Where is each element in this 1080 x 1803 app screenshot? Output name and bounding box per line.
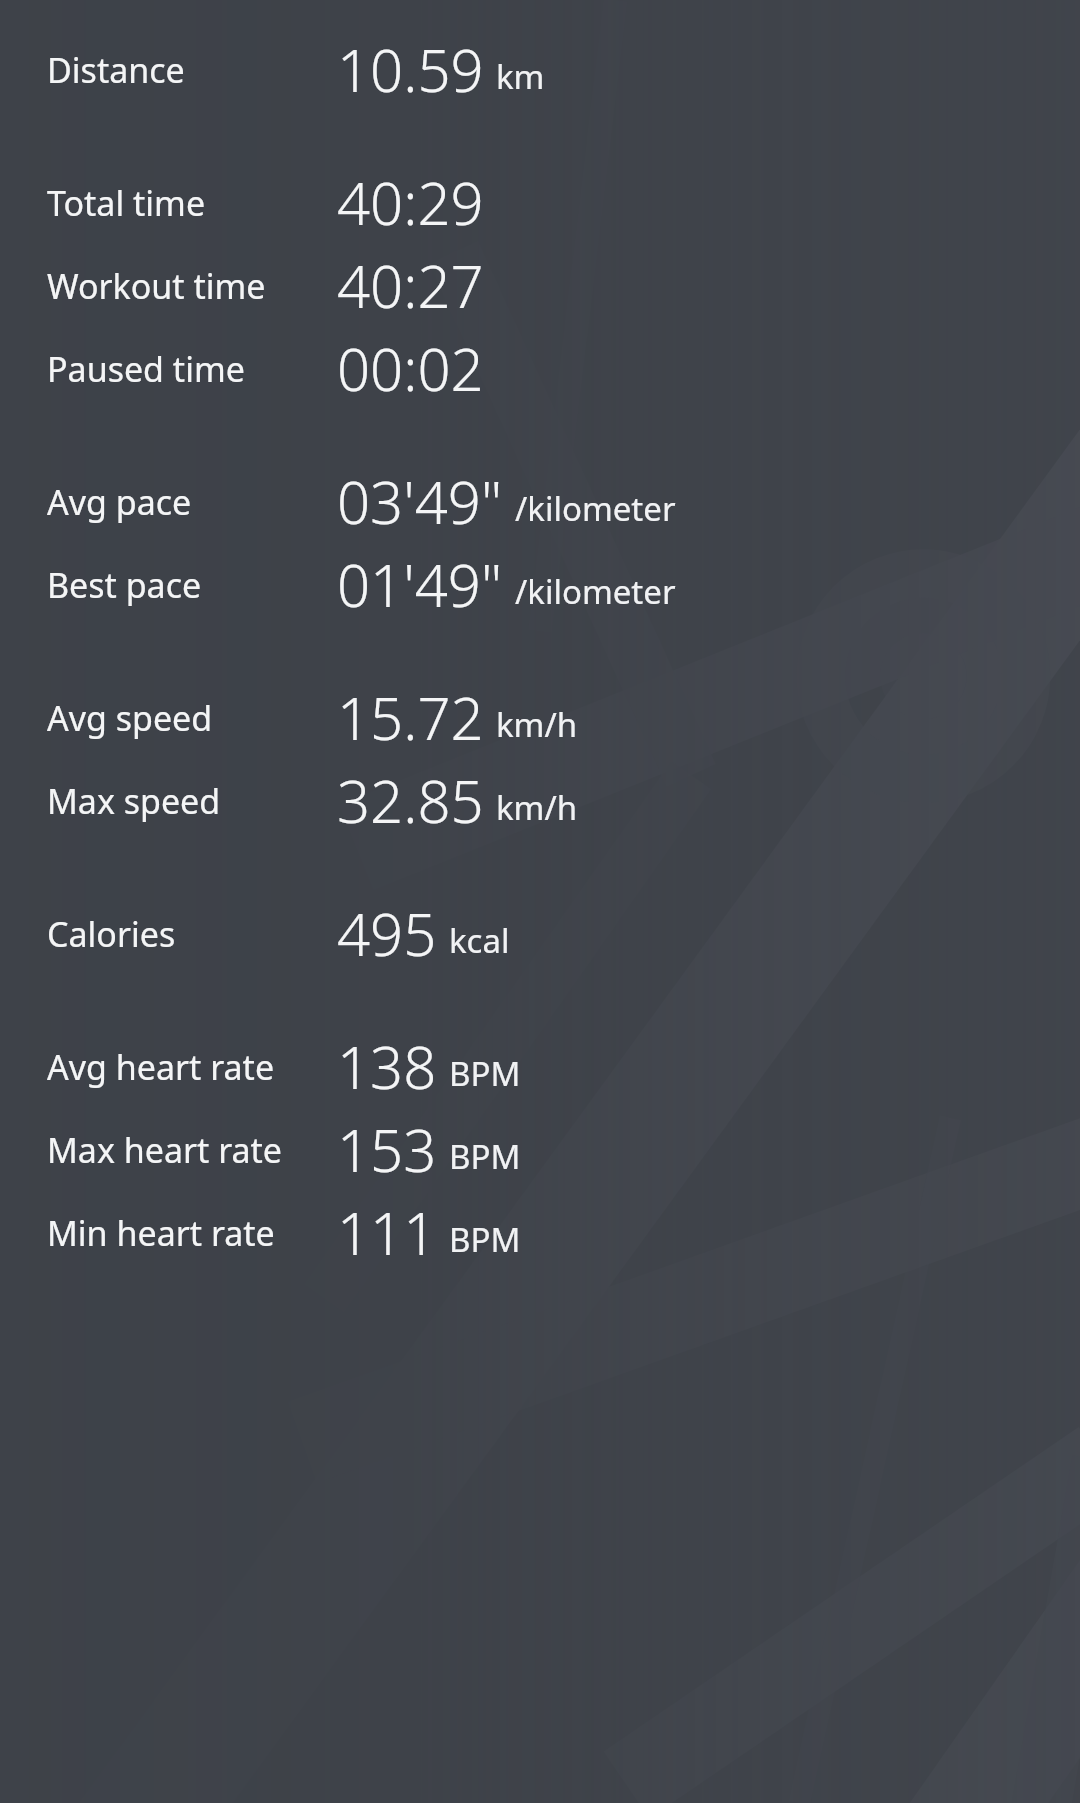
staticText: 03'49" — [337, 462, 503, 541]
staticText: BPM — [449, 1051, 521, 1096]
staticText: 40:29 — [337, 163, 484, 242]
staticText: Min heart rate — [47, 1210, 275, 1256]
button[interactable]: Avg heart rate — [0, 1025, 1080, 1108]
staticText: Avg pace — [47, 479, 192, 525]
staticText: kcal — [449, 918, 510, 963]
button[interactable]: Workout time — [0, 244, 1080, 327]
button[interactable]: Paused time — [0, 327, 1080, 410]
staticText: 138 — [337, 1027, 437, 1106]
staticText: 32.85 — [337, 761, 484, 840]
staticText: 495 — [337, 894, 437, 973]
button[interactable]: Avg pace — [0, 460, 1080, 543]
staticText: 01'49" — [337, 545, 503, 624]
staticText: Avg speed — [47, 695, 213, 741]
staticText: Workout time — [47, 263, 266, 309]
staticText: /kilometer — [515, 486, 676, 531]
staticText: km/h — [496, 785, 578, 830]
button[interactable]: Max speed — [0, 759, 1080, 842]
staticText: Total time — [47, 180, 206, 226]
staticText: Paused time — [47, 346, 245, 392]
staticText: BPM — [449, 1134, 521, 1179]
staticText: Calories — [47, 911, 176, 957]
staticText: 111 — [337, 1193, 437, 1272]
staticText: Avg heart rate — [47, 1044, 275, 1090]
button[interactable]: Distance — [0, 28, 1080, 111]
button[interactable]: Max heart rate — [0, 1108, 1080, 1191]
staticText: km/h — [496, 702, 578, 747]
button[interactable]: Min heart rate — [0, 1191, 1080, 1274]
button[interactable]: Avg speed — [0, 676, 1080, 759]
staticText: 153 — [337, 1110, 437, 1189]
staticText: 40:27 — [337, 246, 484, 325]
button[interactable]: Calories — [0, 892, 1080, 975]
staticText: 00:02 — [337, 329, 484, 408]
staticText: BPM — [449, 1217, 521, 1262]
staticText: /kilometer — [515, 569, 676, 614]
staticText: 15.72 — [337, 678, 484, 757]
staticText: Max heart rate — [47, 1127, 283, 1173]
button[interactable]: Total time — [0, 161, 1080, 244]
button[interactable]: Best pace — [0, 543, 1080, 626]
staticText: Best pace — [47, 562, 202, 608]
staticText: Distance — [47, 47, 185, 93]
staticText: Max speed — [47, 778, 221, 824]
staticText: km — [496, 54, 545, 99]
staticText: 10.59 — [337, 30, 484, 109]
